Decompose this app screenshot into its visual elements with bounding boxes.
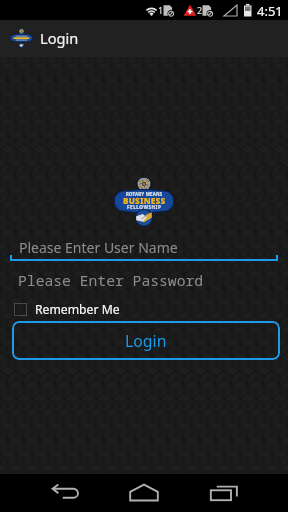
button[interactable]: Login bbox=[12, 321, 280, 360]
staticText: Remember Me bbox=[35, 301, 120, 318]
button[interactable] bbox=[10, 233, 278, 261]
button[interactable]: Recent apps bbox=[193, 474, 251, 512]
staticText: 1 bbox=[158, 4, 164, 16]
staticText: Please Enter User Name bbox=[19, 238, 178, 257]
staticText: BUSINESS bbox=[123, 195, 166, 206]
button[interactable] bbox=[10, 266, 278, 292]
button[interactable]: Remember Me bbox=[14, 300, 120, 318]
button[interactable]: Back bbox=[40, 474, 98, 512]
staticText: 2 bbox=[197, 4, 203, 16]
staticText: ROTARY MEANS bbox=[126, 191, 163, 197]
staticText: FELLOWSHIP bbox=[127, 204, 162, 210]
staticText: Please Enter Password bbox=[18, 270, 204, 290]
staticText: 4:51 bbox=[257, 2, 283, 20]
staticText: Login bbox=[40, 28, 79, 48]
button[interactable]: Home bbox=[115, 474, 173, 512]
staticText: Login bbox=[125, 330, 167, 352]
